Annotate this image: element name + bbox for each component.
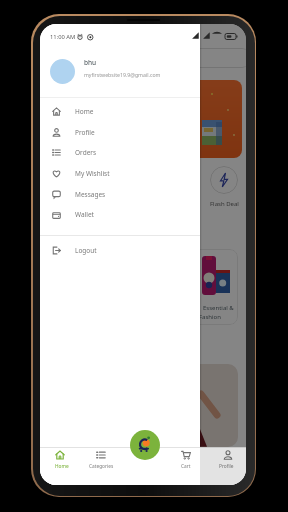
button[interactable] [40,143,200,164]
staticText: Categories [89,463,114,470]
staticText: Wallet [75,210,94,219]
staticText: Flash Deal [210,200,239,208]
staticText: Cart [181,463,191,470]
staticText: Messages [75,190,106,199]
staticText: My Wishlist [75,169,110,178]
button[interactable] [50,59,75,84]
staticText: Home [55,463,69,470]
staticText: Fashion [199,313,221,321]
staticText: Essential & [203,304,234,312]
button[interactable] [40,240,200,261]
button[interactable] [40,163,200,184]
button[interactable] [130,430,160,460]
button[interactable] [40,447,80,485]
staticText: myfirstwebsite19.9@gmail.com [84,71,161,78]
button[interactable] [40,184,200,205]
staticText: 11:00 AM [50,33,76,41]
staticText: Orders [75,148,97,157]
staticText: Profile [75,128,95,137]
button[interactable] [40,205,200,226]
button[interactable] [40,101,200,122]
button[interactable] [208,447,246,485]
staticText: bhu [84,58,97,67]
button[interactable] [40,122,200,143]
staticText: Home [75,107,94,116]
staticText: Profile [219,463,234,470]
button[interactable] [166,447,206,485]
staticText: Logout [75,246,97,255]
button[interactable] [81,447,121,485]
